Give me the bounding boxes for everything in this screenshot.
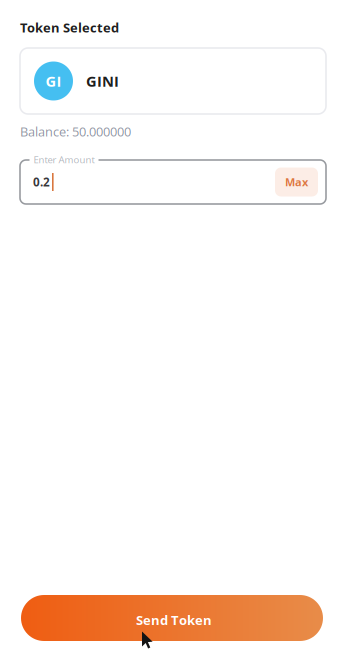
staticText: Token Selected bbox=[20, 19, 119, 36]
staticText: Balance: 50.000000 bbox=[20, 123, 131, 140]
staticText: Send Token bbox=[136, 611, 212, 629]
staticText: Enter Amount bbox=[33, 153, 94, 166]
button[interactable]: Send Token bbox=[21, 595, 323, 641]
staticText: GINI bbox=[86, 71, 119, 91]
staticText: Max bbox=[285, 175, 308, 189]
staticText: 0.2 bbox=[33, 174, 50, 190]
button[interactable]: Max bbox=[275, 167, 318, 196]
staticText: GI bbox=[45, 71, 61, 91]
